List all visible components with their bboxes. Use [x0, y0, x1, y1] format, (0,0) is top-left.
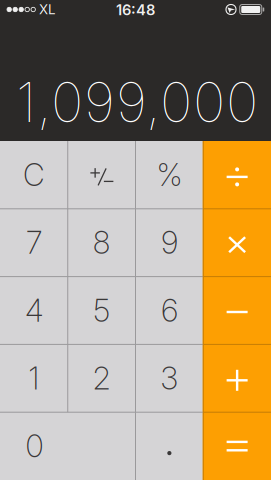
button[interactable]: 8 — [68, 209, 135, 276]
button[interactable]: 3 — [136, 345, 203, 412]
button[interactable]: Decimal point — [136, 420, 203, 480]
button[interactable]: 9 — [136, 209, 203, 276]
staticText: 16:48 — [116, 1, 155, 19]
button[interactable]: 0 — [0, 413, 135, 479]
button[interactable]: 6 — [136, 277, 203, 344]
staticText: 1,099,000 — [16, 69, 258, 135]
staticText: 8 — [93, 224, 111, 261]
button[interactable]: 7 — [0, 209, 67, 276]
button[interactable]: % — [136, 141, 203, 208]
button[interactable]: Add — [204, 347, 271, 414]
staticText: 9 — [161, 224, 178, 261]
button[interactable]: Plus minus — [68, 143, 135, 210]
staticText: C — [23, 156, 45, 193]
staticText: 7 — [26, 224, 42, 261]
button[interactable]: 4 — [0, 277, 67, 344]
staticText: 3 — [160, 360, 178, 397]
staticText: 1 — [28, 360, 39, 397]
button[interactable]: 2 — [68, 345, 135, 412]
staticText: 2 — [93, 360, 111, 397]
button[interactable]: 1 — [0, 345, 67, 412]
staticText: 4 — [25, 292, 43, 329]
button[interactable]: 5 — [68, 277, 135, 344]
staticText: % — [156, 156, 182, 193]
button[interactable]: Subtract — [204, 279, 271, 345]
button[interactable]: Equals — [204, 413, 271, 479]
button[interactable]: C — [0, 141, 67, 208]
staticText: 5 — [93, 292, 110, 329]
staticText: 6 — [161, 292, 178, 329]
staticText: 0 — [25, 427, 43, 465]
staticText: XL — [39, 1, 56, 17]
button[interactable]: Divide — [204, 143, 271, 210]
button[interactable]: Multiply — [204, 211, 271, 278]
